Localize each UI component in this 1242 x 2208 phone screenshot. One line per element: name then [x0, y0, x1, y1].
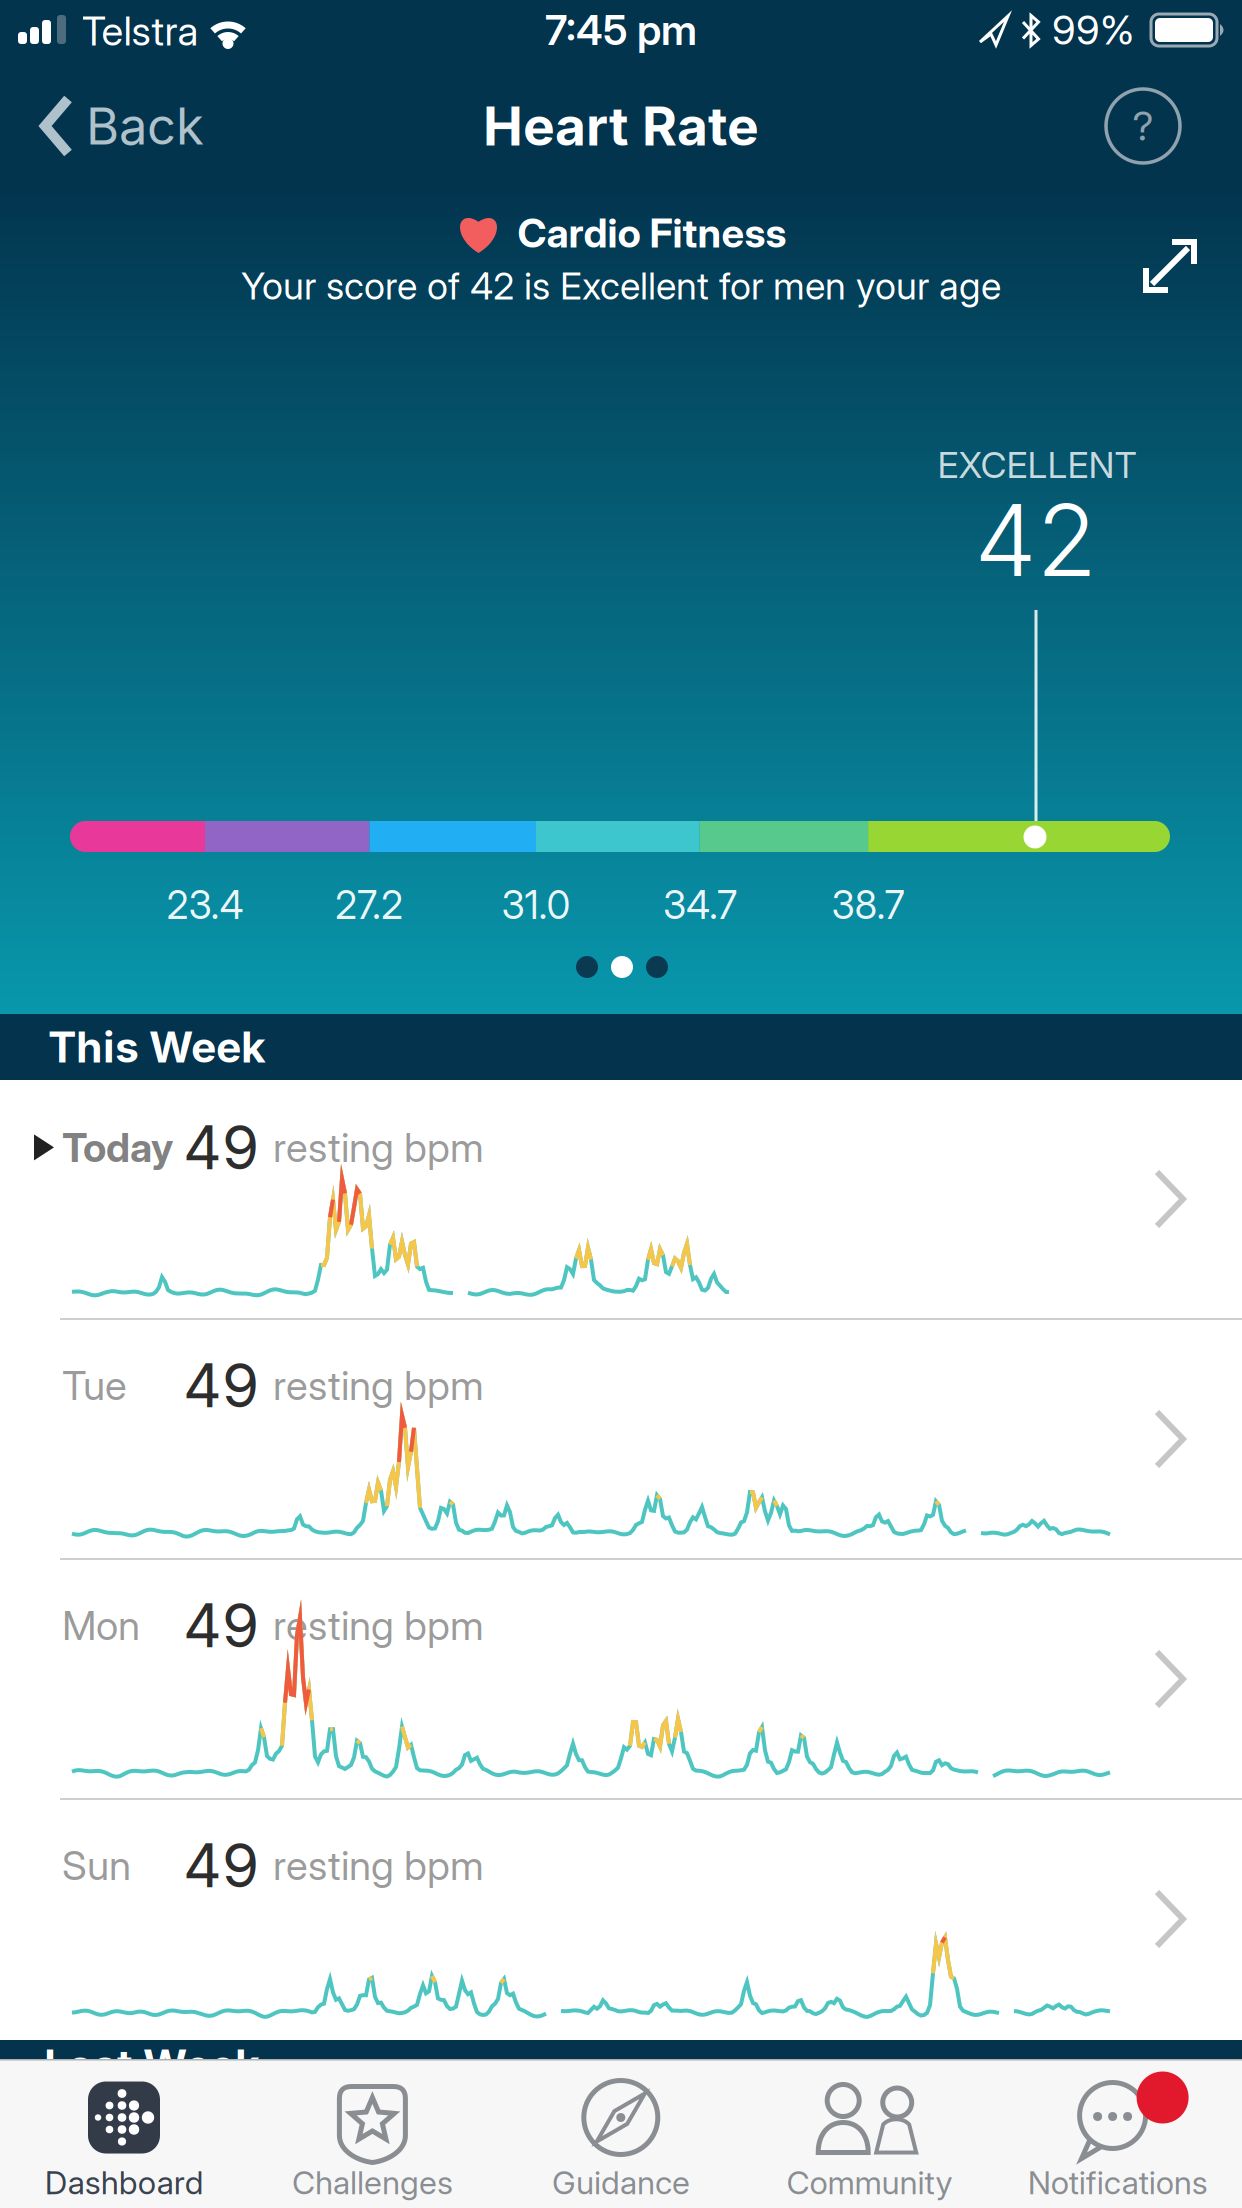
- staticText: Guidance: [552, 2164, 690, 2201]
- button[interactable]: Today: [0, 1080, 1242, 1320]
- button[interactable]: Mon: [0, 1560, 1242, 1800]
- staticText: 49: [183, 1590, 259, 1661]
- staticText: Challenges: [292, 2164, 453, 2201]
- staticText: Heart Rate: [483, 94, 759, 157]
- staticText: resting bpm: [273, 1362, 484, 1409]
- staticText: 31.0: [501, 882, 570, 928]
- staticText: EXCELLENT: [937, 444, 1136, 486]
- button[interactable]: Help: [1105, 88, 1181, 164]
- staticText: resting bpm: [273, 1842, 484, 1889]
- staticText: 49: [183, 1830, 259, 1901]
- button[interactable]: Community: [745, 2060, 994, 2208]
- staticText: 49: [183, 1112, 259, 1183]
- staticText: Community: [786, 2164, 952, 2201]
- staticText: Mon: [62, 1602, 140, 1649]
- staticText: ?: [1132, 102, 1153, 150]
- staticText: 27.2: [335, 882, 403, 928]
- staticText: Dashboard: [45, 2164, 204, 2201]
- button[interactable]: Guidance: [497, 2060, 745, 2208]
- staticText: 23.4: [166, 882, 243, 928]
- staticText: Last Week: [44, 2040, 260, 2090]
- staticText: resting bpm: [273, 1602, 484, 1649]
- staticText: Telstra: [81, 7, 198, 55]
- button[interactable]: Tue: [0, 1320, 1242, 1560]
- staticText: Back: [86, 96, 204, 156]
- staticText: Today: [62, 1124, 173, 1171]
- staticText: 34.7: [663, 882, 737, 928]
- button[interactable]: Sun: [0, 1800, 1242, 2040]
- button[interactable]: Notifications: [994, 2060, 1242, 2208]
- staticText: 38.7: [831, 882, 904, 928]
- staticText: Tue: [62, 1362, 127, 1409]
- staticText: 49: [183, 1350, 259, 1421]
- staticText: resting bpm: [273, 1124, 484, 1171]
- staticText: Your score of 42 is Excellent for men yo…: [241, 264, 1001, 308]
- staticText: 42: [974, 482, 1097, 598]
- button[interactable]: Back: [42, 96, 204, 156]
- staticText: Cardio Fitness: [517, 209, 786, 257]
- staticText: 7:45 pm: [545, 6, 697, 54]
- staticText: This Week: [48, 1022, 266, 1072]
- staticText: Sun: [62, 1842, 131, 1889]
- button[interactable]: Expand: [1142, 238, 1198, 294]
- button[interactable]: Challenges: [248, 2060, 497, 2208]
- button[interactable]: Dashboard: [0, 2060, 248, 2208]
- staticText: Notifications: [1028, 2164, 1208, 2201]
- staticText: 99%: [1052, 6, 1134, 54]
